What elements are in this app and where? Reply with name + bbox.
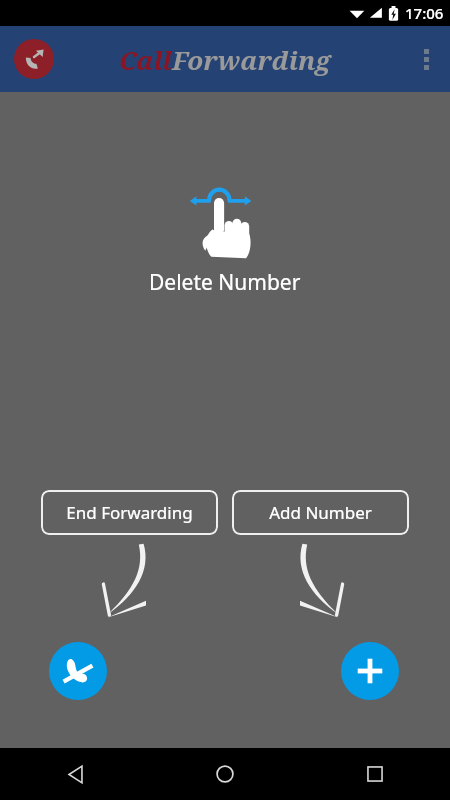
staticText: 17:06 — [405, 3, 444, 23]
button[interactable]: Add number — [341, 642, 399, 700]
staticText: Delete Number — [149, 268, 301, 297]
button[interactable]: Home — [150, 748, 300, 800]
button[interactable]: Call Forwarding app icon — [14, 39, 54, 79]
button[interactable]: More options — [402, 35, 450, 83]
button[interactable]: Recent apps — [300, 748, 450, 800]
button[interactable]: End Forwarding — [41, 490, 218, 535]
staticText: End Forwarding — [66, 501, 193, 524]
button[interactable]: Back — [0, 748, 150, 800]
staticText: CallForwarding — [119, 42, 331, 77]
button[interactable]: Add Number — [232, 490, 409, 535]
button[interactable]: End forwarding — [49, 642, 107, 700]
staticText: Add Number — [269, 501, 372, 524]
